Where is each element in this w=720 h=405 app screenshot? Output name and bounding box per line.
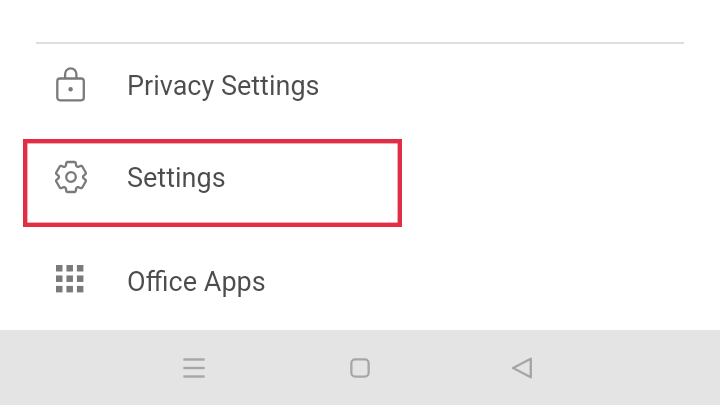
button[interactable]: Recent apps bbox=[170, 344, 218, 392]
button[interactable]: Settings bbox=[0, 135, 720, 230]
button[interactable]: Back bbox=[498, 344, 546, 392]
staticText: Settings bbox=[127, 162, 226, 194]
button[interactable]: Home bbox=[336, 344, 384, 392]
button[interactable]: Privacy Settings bbox=[0, 43, 720, 135]
button[interactable]: Office Apps bbox=[0, 230, 720, 330]
staticText: Office Apps bbox=[127, 266, 266, 298]
staticText: Privacy Settings bbox=[127, 70, 320, 102]
